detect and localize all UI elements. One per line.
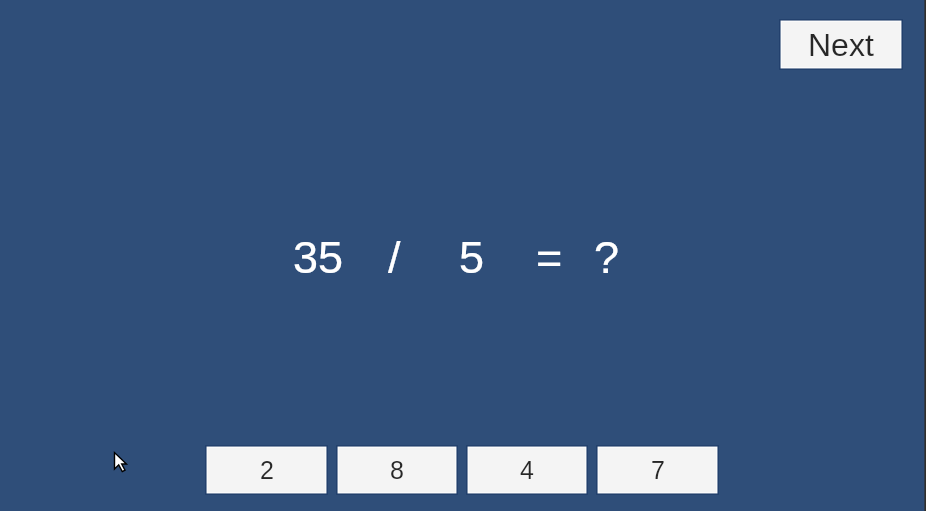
button[interactable]: 8 [336, 445, 458, 495]
staticText: 8 [390, 456, 404, 484]
button[interactable]: 7 [596, 445, 719, 495]
staticText: 35 [293, 232, 344, 282]
staticText: 4 [520, 456, 534, 484]
staticText: / [388, 232, 401, 282]
staticText: 5 [459, 232, 485, 282]
staticText: Next [808, 27, 874, 63]
staticText: ? [594, 232, 620, 282]
button[interactable]: Next [779, 19, 903, 70]
button[interactable]: 2 [205, 445, 328, 495]
staticText: 7 [651, 456, 665, 484]
staticText: 2 [260, 456, 274, 484]
button[interactable]: 4 [466, 445, 588, 495]
other: Pointer [113, 451, 133, 475]
staticText: = [536, 232, 563, 282]
